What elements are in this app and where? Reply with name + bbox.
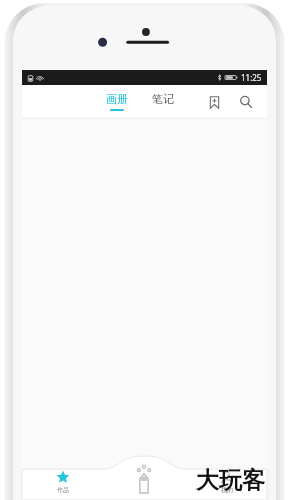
staticText: 大玩客 xyxy=(196,466,265,495)
button[interactable]: Create xyxy=(103,456,185,500)
button[interactable]: Search xyxy=(233,89,259,115)
staticText: 我的 xyxy=(221,486,233,494)
button[interactable]: 我的 xyxy=(185,456,267,500)
staticText: 11:25 xyxy=(241,72,262,83)
staticText: 笔记 xyxy=(152,92,174,106)
button[interactable]: Bookmark xyxy=(201,89,227,115)
staticText: 画册 xyxy=(106,92,128,106)
button[interactable]: 画册 xyxy=(102,89,132,114)
staticText: 作品 xyxy=(57,486,69,494)
button[interactable]: 作品 xyxy=(22,456,103,500)
button[interactable]: 笔记 xyxy=(148,89,178,114)
